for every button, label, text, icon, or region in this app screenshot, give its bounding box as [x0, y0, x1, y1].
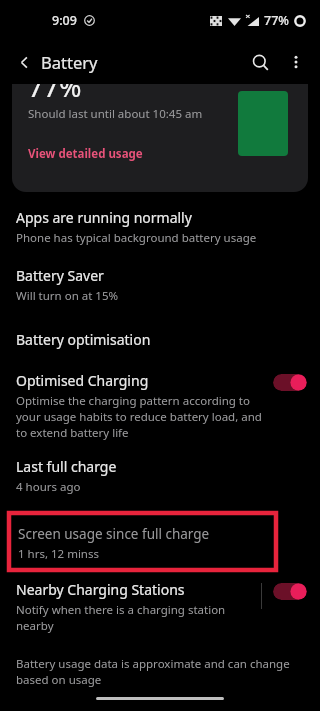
button[interactable]: Screen usage since full charge [9, 513, 276, 570]
button[interactable]: More options [278, 44, 314, 80]
button[interactable]: Search [242, 44, 278, 80]
staticText: Last full charge [16, 457, 117, 476]
staticText: Battery usage data is approximate and ca… [16, 656, 300, 688]
staticText: View detailed usage [28, 146, 143, 162]
button[interactable]: Last full charge [0, 457, 320, 495]
staticText: 1 hrs, 12 minss [18, 546, 99, 562]
staticText: Battery [41, 51, 98, 73]
staticText: Should last until about 10:45 am [28, 106, 203, 122]
button[interactable]: Battery Saver [0, 266, 320, 304]
button[interactable]: Nearby Charging Stations [0, 580, 320, 634]
staticText: Nearby Charging Stations [16, 580, 185, 599]
button[interactable]: 77% [12, 84, 308, 192]
staticText: 77% [28, 84, 82, 105]
button[interactable]: Apps are running normally [0, 208, 320, 246]
staticText: Optimise the charging pattern according … [16, 393, 265, 441]
staticText: 9:09 [52, 12, 77, 29]
staticText: Battery Saver [16, 266, 104, 285]
staticText: Screen usage since full charge [18, 525, 210, 543]
button[interactable]: Optimised Charging [273, 374, 307, 391]
button[interactable]: Optimised Charging [0, 371, 320, 441]
staticText: Phone has typical background battery usa… [16, 230, 257, 246]
staticText: Battery optimisation [16, 330, 151, 349]
button[interactable]: Battery optimisation [0, 330, 320, 349]
staticText: 4 hours ago [16, 479, 81, 495]
staticText: Apps are running normally [16, 208, 192, 227]
button[interactable]: Back [8, 46, 40, 78]
staticText: 77% [264, 12, 289, 29]
button[interactable]: Nearby Charging Stations [273, 583, 307, 600]
staticText: Will turn on at 15% [16, 288, 119, 304]
staticText: Notify when there is a charging station … [16, 602, 253, 634]
staticText: Optimised Charging [16, 371, 149, 390]
